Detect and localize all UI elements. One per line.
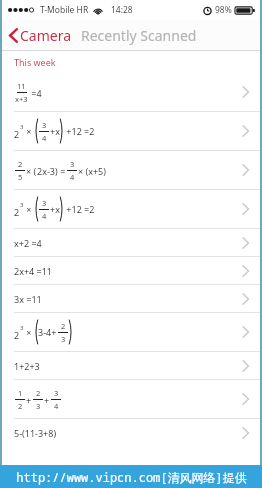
staticText: 1	[18, 388, 23, 398]
staticText: 3	[42, 198, 47, 208]
staticText: 2	[14, 329, 20, 341]
button[interactable]: Back	[7, 24, 74, 47]
staticText: 3	[70, 159, 75, 169]
staticText: ×	[24, 326, 34, 338]
button[interactable]: 2	[0, 151, 262, 189]
staticText: 14:28	[111, 4, 133, 16]
staticText: 3	[61, 334, 66, 344]
staticText: +x	[50, 125, 60, 137]
button[interactable]: 1+2+3	[0, 352, 262, 379]
staticText: +	[44, 394, 50, 406]
button[interactable]: 3x =11	[0, 285, 262, 312]
button[interactable]: x+2 =4	[0, 229, 262, 256]
staticText: Recently Scanned	[81, 26, 197, 45]
staticText: x+2 =4	[14, 237, 42, 249]
other: Open	[242, 427, 249, 439]
staticText: 11	[17, 81, 26, 91]
other: Open	[242, 326, 249, 338]
button[interactable]: 2	[0, 190, 262, 228]
staticText: 2x+4 =11	[14, 265, 52, 277]
staticText: 3	[42, 120, 47, 130]
other: Open	[242, 360, 249, 372]
staticText: 4	[54, 401, 59, 411]
staticText: 3	[20, 123, 24, 131]
staticText: × (	[26, 165, 37, 177]
staticText: 2	[18, 159, 23, 169]
staticText: +x	[50, 203, 60, 215]
staticText: 2	[14, 128, 20, 140]
staticText: 4	[70, 172, 75, 182]
other: Open	[242, 203, 249, 215]
staticText: 5	[18, 172, 23, 182]
staticText: 2	[18, 401, 23, 411]
other: Back	[9, 28, 18, 43]
staticText: +12 =2	[64, 125, 95, 137]
staticText: =	[58, 165, 66, 177]
other: Open	[242, 393, 249, 405]
other: Open	[242, 86, 249, 98]
other: Open	[242, 265, 249, 277]
staticText: 2	[36, 388, 41, 398]
staticText: T-Mobile HR	[40, 4, 89, 16]
staticText: 4	[42, 211, 47, 221]
other: Open	[242, 164, 249, 176]
staticText: 3-4+	[38, 326, 57, 338]
button[interactable]: 2	[0, 112, 262, 150]
staticText: 3	[36, 401, 41, 411]
staticText: x+3	[15, 94, 28, 104]
staticText: 3	[20, 324, 24, 332]
other: Open	[242, 293, 249, 305]
staticText: +	[26, 394, 32, 406]
staticText: 2x-3)	[37, 165, 58, 177]
staticText: ×	[24, 125, 34, 137]
staticText: +12 =2	[64, 203, 95, 215]
button[interactable]: 11	[0, 73, 262, 111]
staticText: 2	[61, 321, 66, 331]
staticText: 98%	[215, 4, 232, 16]
staticText: 1+2+3	[14, 360, 40, 372]
staticText: 4	[42, 133, 47, 143]
staticText: 3	[54, 388, 59, 398]
other: Open	[242, 125, 249, 137]
staticText: 3	[20, 201, 24, 209]
other: Open	[242, 237, 249, 249]
button[interactable]: 2x+4 =11	[0, 257, 262, 284]
staticText: 5-(11-3+8)	[14, 427, 57, 439]
button[interactable]: 2	[0, 313, 262, 351]
staticText: This week	[14, 56, 56, 68]
staticText: 2	[14, 206, 20, 218]
staticText: 3x =11	[14, 293, 42, 305]
staticText: × (x+5)	[78, 165, 106, 177]
button[interactable]: 5-(11-3+8)	[0, 419, 262, 446]
staticText: ×	[24, 203, 34, 215]
staticText: =4	[29, 87, 42, 99]
button[interactable]: 1	[0, 380, 262, 418]
staticText: Camera	[20, 26, 72, 45]
staticText: http://www.vipcn.com[清风网络]提供	[16, 469, 247, 485]
